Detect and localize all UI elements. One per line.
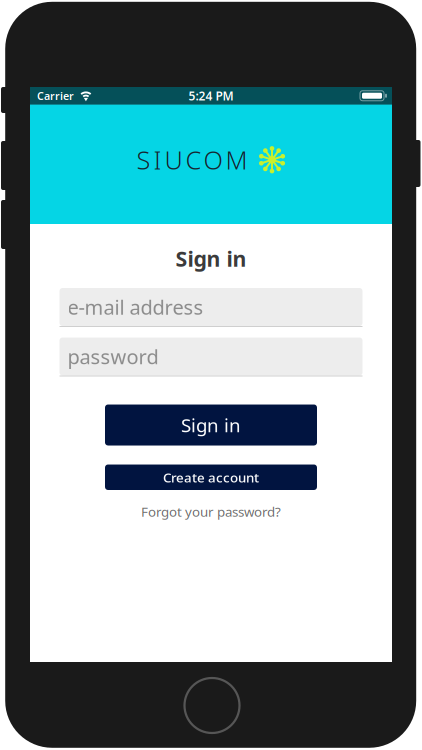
button[interactable]: Forgot your password?: [141, 502, 281, 521]
staticText: 5:24 PM: [188, 88, 233, 104]
staticText: e-mail address: [67, 294, 203, 320]
staticText: Forgot your password?: [141, 503, 281, 520]
button[interactable]: Create account: [105, 464, 317, 490]
staticText: Carrier: [37, 89, 74, 103]
staticText: Sign in: [181, 413, 241, 437]
button[interactable]: Sign in: [105, 404, 317, 445]
staticText: Create account: [163, 468, 259, 486]
staticText: SIUCOM: [136, 143, 247, 176]
staticText: Sign in: [175, 244, 246, 273]
staticText: password: [67, 343, 158, 370]
